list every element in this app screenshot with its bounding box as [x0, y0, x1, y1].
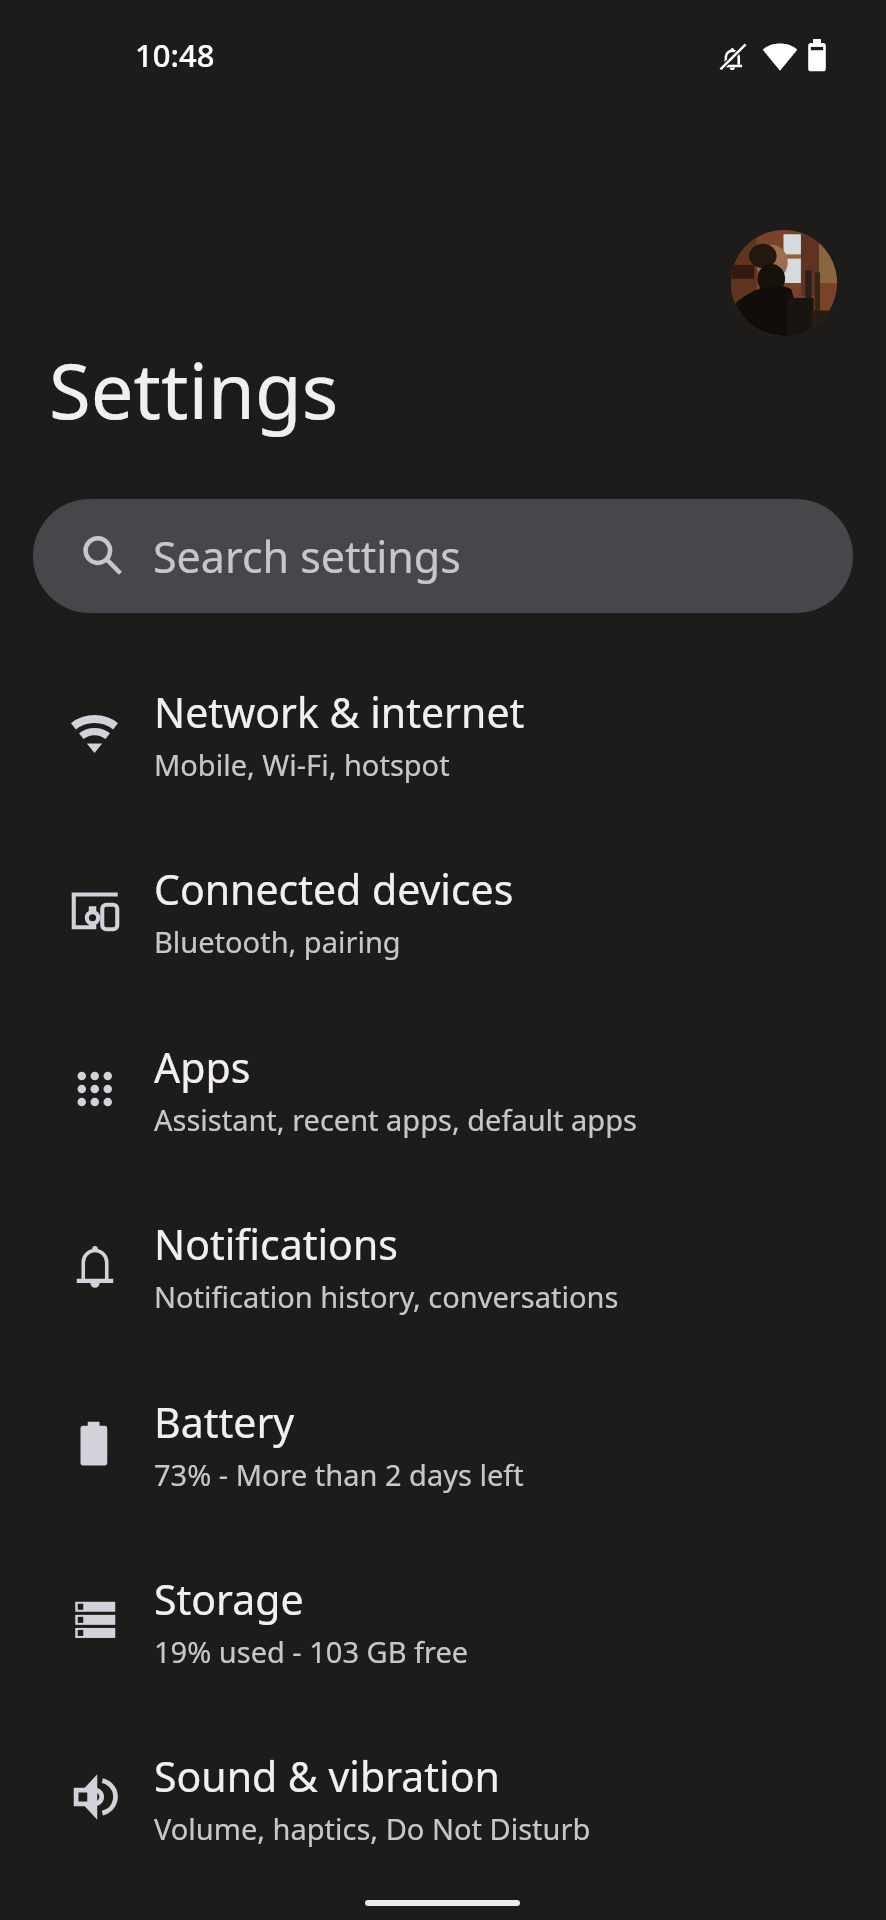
button[interactable]: Apps — [0, 1015, 886, 1192]
staticText: Battery — [154, 1394, 295, 1450]
button[interactable]: Battery — [0, 1370, 886, 1547]
staticText: 73% - More than 2 days left — [154, 1455, 524, 1494]
staticText: 19% used - 103 GB free — [154, 1632, 469, 1671]
button[interactable]: Sound & vibration — [0, 1724, 886, 1901]
staticText: Network & internet — [154, 684, 525, 740]
staticText: Settings — [49, 338, 339, 442]
staticText: Bluetooth, pairing — [154, 922, 401, 961]
staticText: Notifications — [154, 1216, 398, 1272]
staticText: Connected devices — [154, 861, 514, 917]
button[interactable]: Network & internet — [0, 660, 886, 837]
staticText: Notification history, conversations — [154, 1277, 619, 1316]
staticText: 10:48 — [135, 34, 215, 76]
staticText: Sound & vibration — [154, 1748, 500, 1804]
button[interactable]: Connected devices — [0, 837, 886, 1014]
staticText: Volume, haptics, Do Not Disturb — [154, 1809, 591, 1848]
staticText: Search settings — [153, 527, 461, 586]
button[interactable]: Storage — [0, 1547, 886, 1724]
button[interactable]: Search settings — [33, 499, 853, 613]
staticText: Storage — [154, 1571, 304, 1627]
staticText: Mobile, Wi-Fi, hotspot — [154, 745, 450, 784]
staticText: Assistant, recent apps, default apps — [154, 1100, 637, 1139]
button[interactable]: Account — [731, 230, 837, 336]
button[interactable]: Notifications — [0, 1192, 886, 1369]
staticText: Apps — [154, 1039, 251, 1095]
